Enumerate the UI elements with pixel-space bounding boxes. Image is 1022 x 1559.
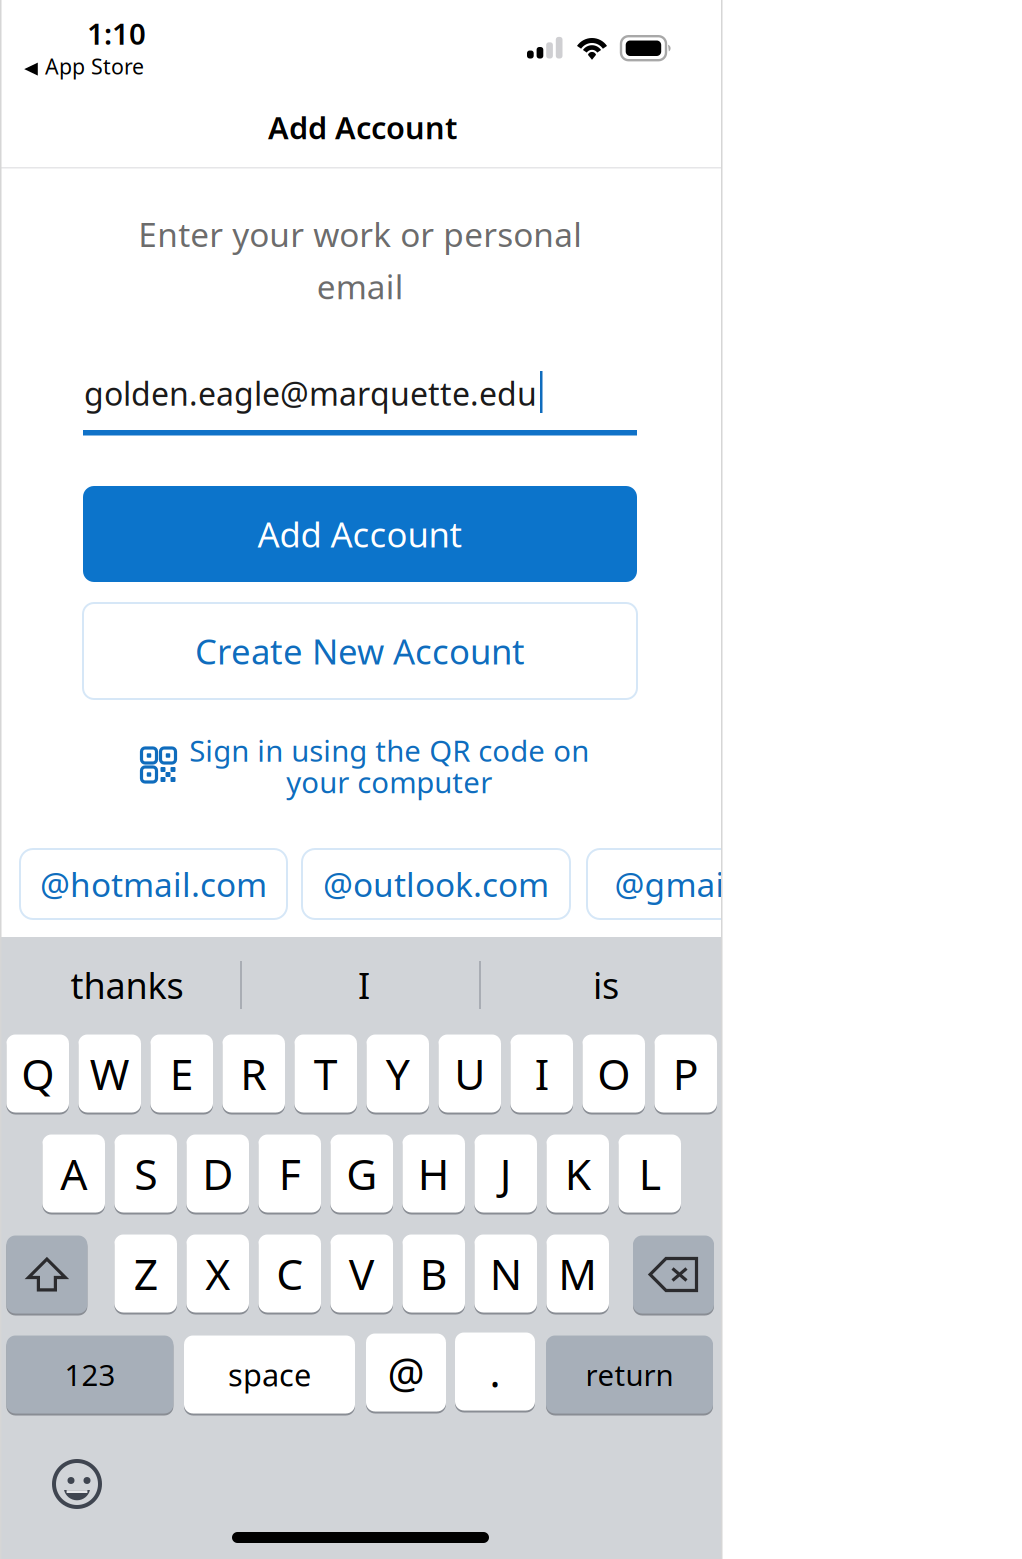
- button[interactable]: U: [438, 1034, 501, 1114]
- staticText: N: [490, 1245, 522, 1302]
- button[interactable]: C: [258, 1234, 321, 1314]
- button[interactable]: return: [546, 1335, 713, 1415]
- staticText: Enter your work or personal email: [138, 212, 582, 308]
- button[interactable]: Sign in using the QR code on your comput…: [139, 735, 597, 817]
- staticText: Q: [21, 1045, 54, 1102]
- staticText: R: [240, 1045, 267, 1102]
- staticText: F: [279, 1145, 301, 1202]
- button[interactable]: Z: [114, 1234, 177, 1314]
- staticText: Add Account: [268, 107, 457, 148]
- button[interactable]: X: [186, 1234, 249, 1314]
- button[interactable]: A: [42, 1134, 105, 1214]
- button[interactable]: I: [245, 949, 483, 1021]
- staticText: W: [90, 1045, 130, 1102]
- button[interactable]: @outlook.com: [302, 849, 570, 919]
- staticText: X: [205, 1245, 230, 1302]
- staticText: is: [593, 961, 619, 1009]
- button[interactable]: .: [455, 1332, 535, 1412]
- staticText: Add Account: [257, 511, 462, 557]
- staticText: J: [500, 1145, 512, 1202]
- staticText: @outlook.com: [323, 862, 549, 906]
- staticText: G: [346, 1145, 377, 1202]
- button[interactable]: L: [618, 1134, 681, 1214]
- staticText: 1:10: [87, 14, 146, 53]
- button[interactable]: S: [114, 1134, 177, 1214]
- button[interactable]: O: [582, 1034, 645, 1114]
- button[interactable]: I: [510, 1034, 573, 1114]
- button[interactable]: P: [654, 1034, 717, 1114]
- button[interactable]: V: [330, 1234, 393, 1314]
- button[interactable]: Add Account: [83, 486, 637, 582]
- button[interactable]: B: [402, 1234, 465, 1314]
- button[interactable]: N: [474, 1234, 537, 1314]
- staticText: A: [60, 1145, 87, 1202]
- button[interactable]: J: [474, 1134, 537, 1214]
- button[interactable]: Shift: [6, 1235, 87, 1315]
- staticText: L: [639, 1145, 661, 1202]
- button[interactable]: 123: [6, 1335, 173, 1415]
- staticText: H: [418, 1145, 450, 1202]
- staticText: return: [585, 1355, 673, 1394]
- staticText: Y: [386, 1045, 410, 1102]
- staticText: U: [454, 1045, 485, 1102]
- staticText: thanks: [70, 961, 183, 1009]
- button[interactable]: T: [294, 1034, 357, 1114]
- button[interactable]: R: [222, 1034, 285, 1114]
- button[interactable]: H: [402, 1134, 465, 1214]
- staticText: App Store: [45, 52, 144, 80]
- staticText: I: [535, 1045, 549, 1102]
- button[interactable]: @gmail.com: [587, 849, 837, 919]
- staticText: @: [387, 1345, 424, 1400]
- button[interactable]: thanks: [8, 949, 246, 1021]
- staticText: @gmail.com: [614, 862, 809, 906]
- button[interactable]: space: [184, 1335, 355, 1415]
- button[interactable]: Create New Account: [83, 603, 637, 699]
- staticText: Sign in using the QR code on your comput…: [189, 731, 589, 801]
- button[interactable]: is: [487, 949, 725, 1021]
- button[interactable]: E: [150, 1034, 213, 1114]
- button[interactable]: G: [330, 1134, 393, 1214]
- button[interactable]: D: [186, 1134, 249, 1214]
- button[interactable]: Delete: [633, 1235, 714, 1315]
- staticText: M: [558, 1245, 597, 1302]
- button[interactable]: Q: [6, 1034, 69, 1114]
- staticText: Create New Account: [195, 628, 525, 674]
- staticText: S: [134, 1145, 157, 1202]
- staticText: C: [276, 1245, 303, 1302]
- staticText: Z: [134, 1245, 158, 1302]
- button[interactable]: F: [258, 1134, 321, 1214]
- staticText: B: [420, 1245, 448, 1302]
- staticText: E: [170, 1045, 194, 1102]
- staticText: K: [565, 1145, 591, 1202]
- staticText: space: [228, 1354, 311, 1395]
- staticText: .: [489, 1344, 500, 1399]
- staticText: P: [673, 1045, 699, 1102]
- staticText: D: [202, 1145, 233, 1202]
- button[interactable]: M: [546, 1234, 609, 1314]
- button[interactable]: @: [366, 1333, 446, 1413]
- staticText: 123: [64, 1355, 115, 1394]
- button[interactable]: W: [78, 1034, 141, 1114]
- staticText: V: [349, 1245, 375, 1302]
- button[interactable]: Y: [366, 1034, 429, 1114]
- staticText: I: [358, 961, 370, 1009]
- button[interactable]: Emoji keyboard: [51, 1458, 107, 1514]
- staticText: O: [597, 1045, 630, 1102]
- button[interactable]: K: [546, 1134, 609, 1214]
- staticText: @hotmail.com: [40, 862, 267, 906]
- button[interactable]: @hotmail.com: [20, 849, 287, 919]
- staticText: golden.eagle@marquette.edu: [84, 372, 537, 414]
- staticText: T: [314, 1045, 338, 1102]
